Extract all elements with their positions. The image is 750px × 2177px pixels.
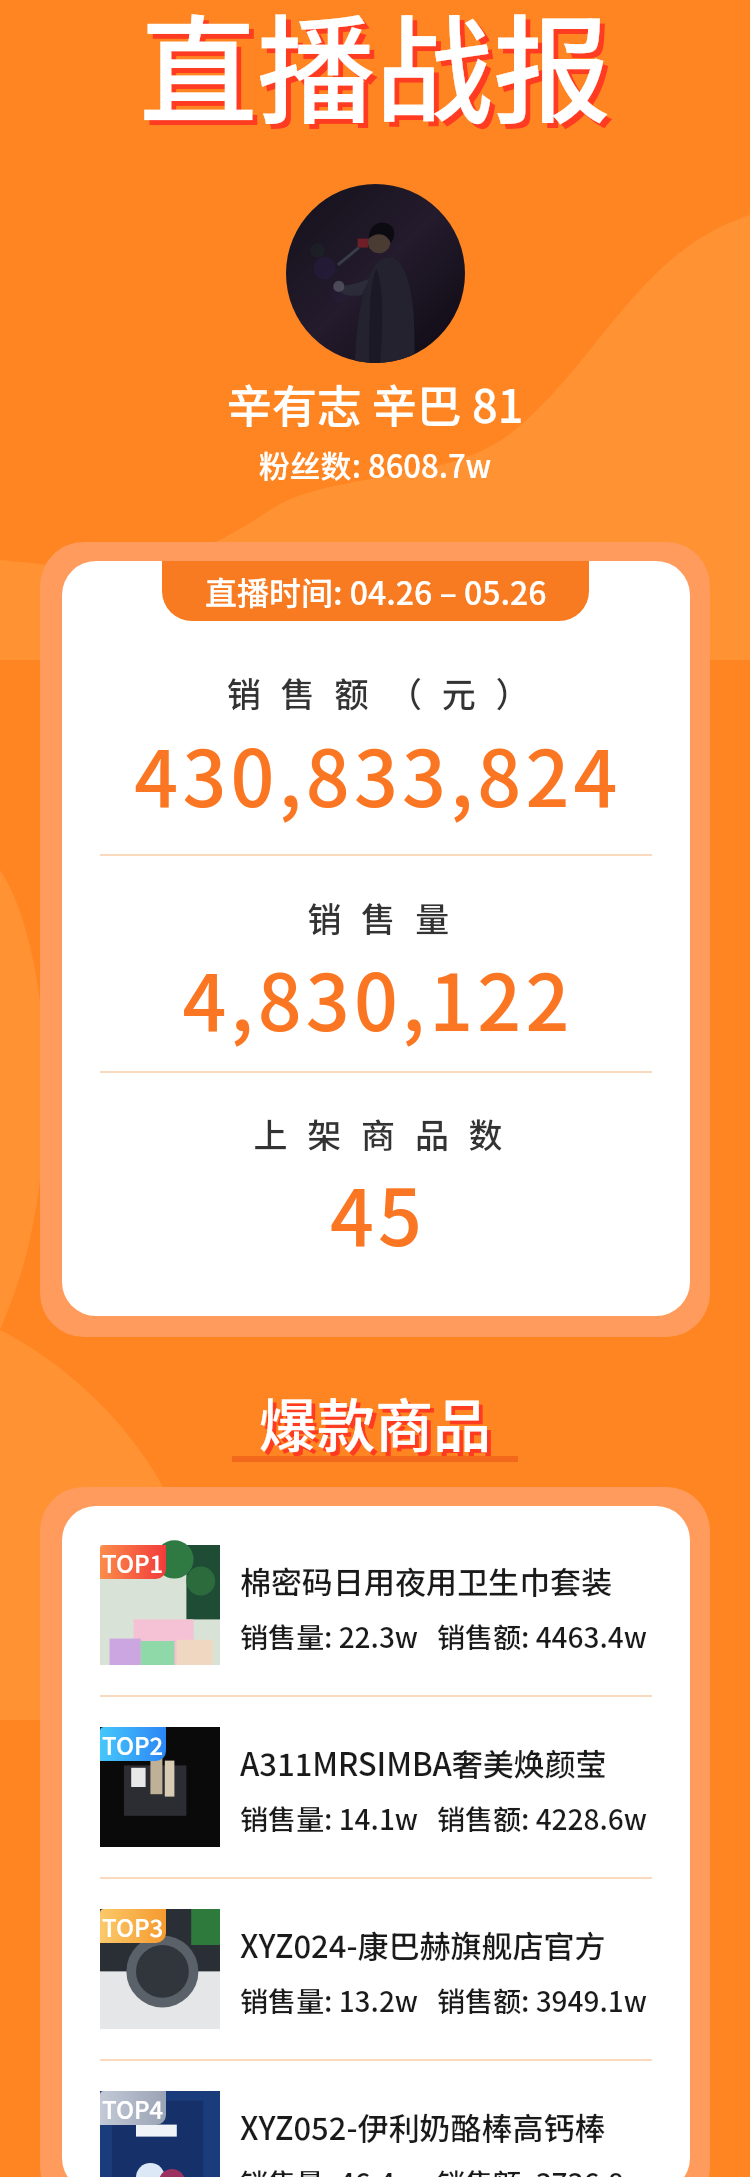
staticText: 辛有志 辛巴 81	[0, 371, 750, 436]
staticText: 销售量: 46.4w 销售额: 3736.8w	[240, 2162, 647, 2177]
staticText: 销售额（元）	[74, 668, 690, 717]
staticText: 棉密码日用夜用卫生巾套装	[240, 1558, 612, 1603]
staticText: TOP2	[102, 1727, 164, 1761]
staticText: A311MRSIMBA奢美焕颜莹	[240, 1740, 607, 1785]
button[interactable]: TOP4	[62, 2060, 690, 2177]
staticText: 4,830,122	[64, 942, 690, 1053]
staticText: 直播战报	[144, 0, 617, 153]
staticText: 销售量: 22.3w 销售额: 4463.4w	[240, 1616, 647, 1657]
staticText: XYZ052-伊利奶酪棒高钙棒	[240, 2104, 606, 2149]
staticText: TOP3	[102, 1909, 164, 1943]
staticText: 销售量: 13.2w 销售额: 3949.1w	[240, 1980, 647, 2021]
button[interactable]: TOP1	[62, 1514, 690, 1696]
staticText: XYZ024-康巴赫旗舰店官方	[240, 1922, 606, 1967]
button[interactable]: TOP3	[62, 1878, 690, 2060]
staticText: 粉丝数: 8608.7w	[0, 442, 750, 487]
staticText: TOP4	[102, 2091, 164, 2125]
staticText: 爆款商品	[263, 1384, 496, 1468]
button[interactable]: 直播时间: 04.26 – 05.26	[162, 561, 589, 621]
button[interactable]: TOP2	[62, 1696, 690, 1878]
staticText: 直播时间: 04.26 – 05.26	[205, 568, 547, 614]
staticText: 爆款商品	[259, 1380, 492, 1464]
staticText: 430,833,824	[64, 718, 690, 829]
staticText: 直播战报	[139, 0, 612, 148]
staticText: TOP1	[102, 1545, 164, 1579]
staticText: 上架商品数	[74, 1109, 690, 1158]
staticText: 销售量	[74, 893, 690, 942]
staticText: 销售量: 14.1w 销售额: 4228.6w	[240, 1798, 647, 1839]
staticText: 45	[64, 1157, 690, 1268]
